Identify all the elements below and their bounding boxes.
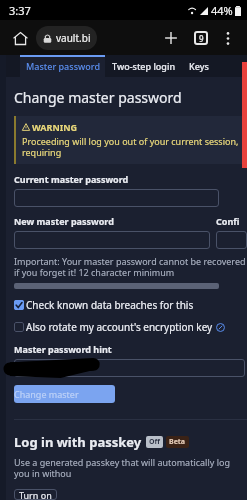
staticText: Change master password [14, 388, 115, 400]
button[interactable] [14, 189, 219, 207]
staticText: Two-step login [112, 60, 176, 72]
staticText: 44% [211, 3, 233, 18]
staticText: Keys [189, 60, 209, 72]
button[interactable]: Tabs [188, 25, 214, 51]
staticText: Important: Your master password cannot b… [14, 255, 246, 279]
button[interactable] [14, 359, 245, 377]
staticText: 9 [199, 33, 204, 44]
staticText: Proceeding will log you out of your curr… [22, 135, 247, 159]
staticText: Change master password [14, 88, 182, 107]
staticText: WARNING [32, 121, 78, 133]
button[interactable]: Check known data breaches for this passw… [14, 298, 237, 312]
staticText: New master password [14, 215, 114, 227]
staticText: Off [149, 437, 160, 447]
button[interactable]: More options [216, 26, 240, 50]
button[interactable]: vault.bitwarden.com/ [36, 26, 97, 50]
staticText: Current master password [14, 173, 129, 185]
staticText: Master password [26, 60, 100, 72]
button[interactable]: Turn on [14, 489, 57, 500]
staticText: Also rotate my account's encryption key [26, 320, 213, 334]
button[interactable]: New tab [158, 25, 184, 51]
button[interactable]: Master password [20, 55, 105, 77]
staticText: Master password hint [14, 343, 112, 355]
button[interactable]: Change master password [14, 385, 115, 403]
button[interactable]: Home [7, 25, 33, 51]
staticText: Beta [169, 437, 186, 447]
button[interactable] [216, 231, 247, 249]
button[interactable] [14, 231, 210, 249]
staticText: Log in with passkey [14, 433, 142, 451]
button[interactable]: Also rotate my account's encryption key [14, 320, 237, 334]
staticText: Use a generated passkey that will automa… [14, 456, 247, 480]
staticText: Check known data breaches for this passw… [26, 298, 237, 312]
button[interactable]: Two-step login [105, 55, 183, 77]
staticText: Confi [216, 215, 240, 227]
staticText: vault.bitwarden.com/ [56, 31, 91, 45]
button[interactable]: Keys [183, 55, 215, 77]
staticText: Turn on [19, 489, 52, 500]
staticText: 3:37 [9, 3, 31, 18]
